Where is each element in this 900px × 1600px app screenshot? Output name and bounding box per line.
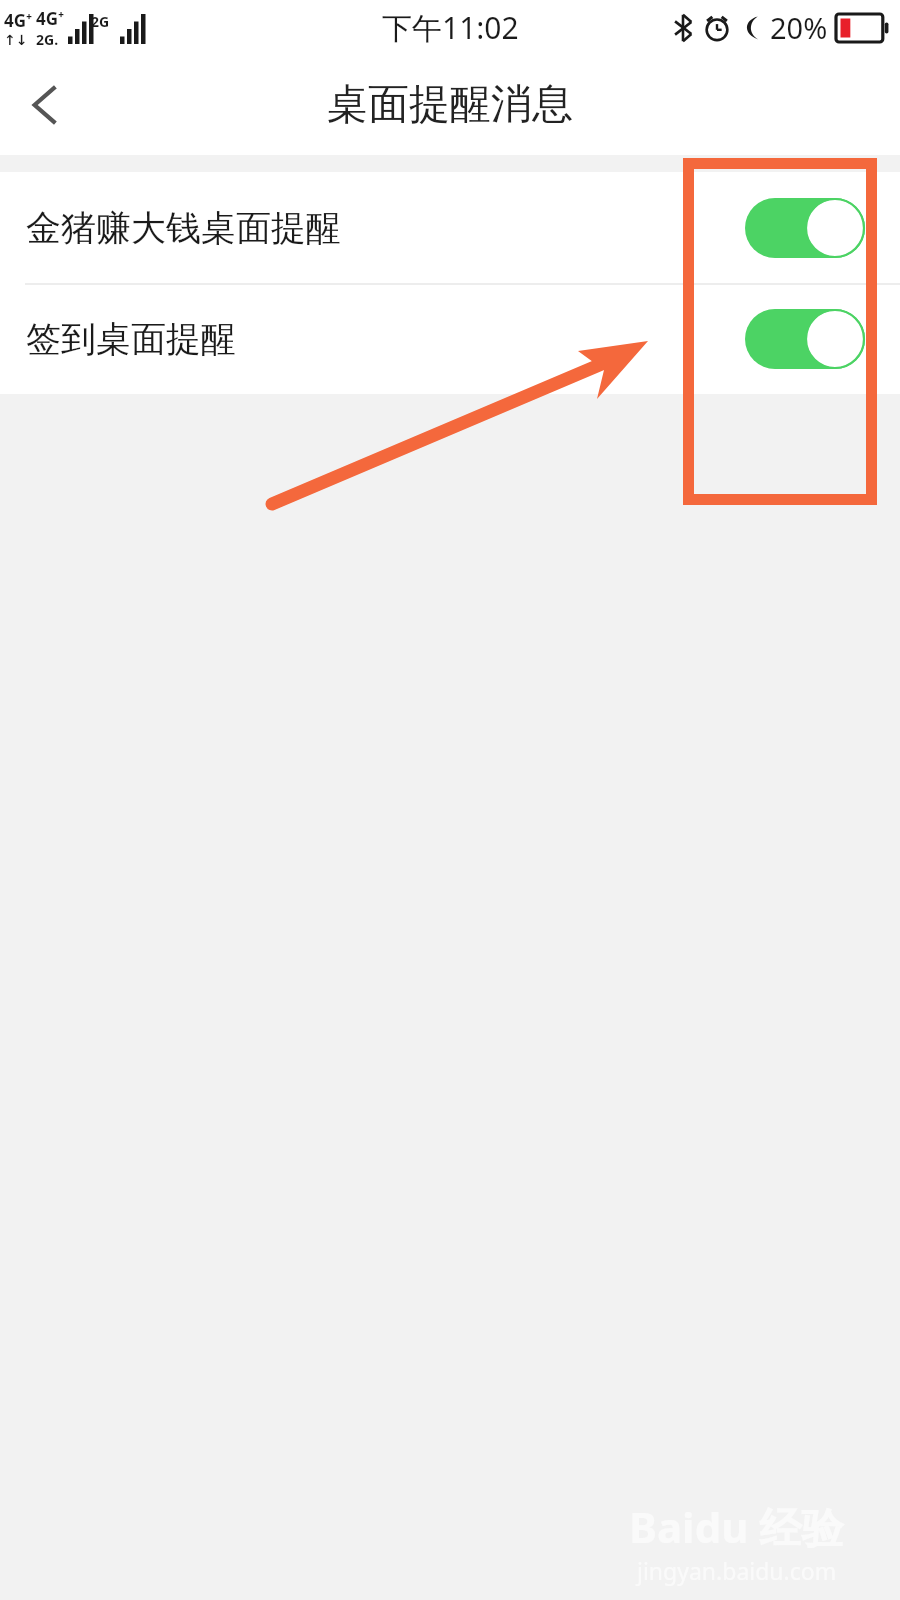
staticText: 下午11:02	[382, 7, 519, 48]
button[interactable]: Back	[0, 60, 90, 150]
staticText: Baidu 经验	[629, 1498, 844, 1555]
button[interactable]: 金猪赚大钱桌面提醒	[0, 172, 900, 283]
staticText: 金猪赚大钱桌面提醒	[26, 206, 341, 250]
staticText: 4G⁺	[4, 9, 33, 32]
staticText: 2G	[91, 12, 110, 31]
staticText: 20%	[770, 8, 828, 47]
staticText: ↑↓	[4, 32, 28, 48]
button[interactable]: 签到桌面提醒	[26, 283, 865, 394]
button[interactable]: Toggle switch, on	[745, 309, 865, 369]
staticText: 4G⁺	[36, 7, 65, 30]
button[interactable]: Toggle switch, on	[745, 198, 865, 258]
staticText: 签到桌面提醒	[26, 317, 236, 361]
staticText: 桌面提醒消息	[327, 79, 573, 131]
staticText: 2G.	[36, 30, 59, 49]
